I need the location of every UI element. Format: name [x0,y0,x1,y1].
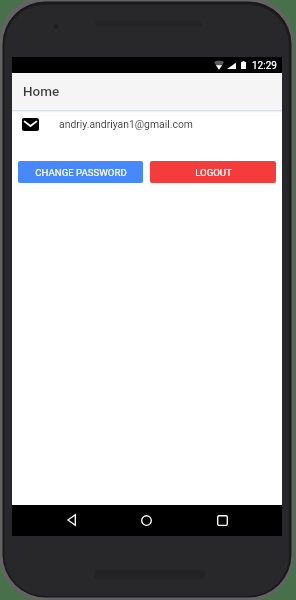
staticText: Home [23,83,60,99]
button[interactable]: Back [57,506,85,534]
staticText: LOGOUT [195,167,232,178]
button[interactable]: CHANGE PASSWORD [18,161,143,183]
button[interactable]: LOGOUT [150,161,276,183]
staticText: andriy.andriyan1@gmail.com [59,118,193,130]
button[interactable]: Home [132,506,160,534]
staticText: 12:29 [252,60,277,72]
button[interactable]: Recents [208,506,236,534]
staticText: CHANGE PASSWORD [35,167,127,178]
